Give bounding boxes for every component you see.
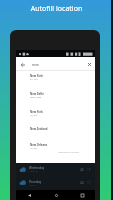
other: Back	[19, 61, 26, 68]
button[interactable]: Back	[16, 190, 43, 200]
button[interactable]: New Orleans	[16, 140, 95, 158]
staticText: IN, USA	[30, 114, 38, 117]
staticText: New York	[30, 110, 43, 114]
staticText: Light rain	[29, 170, 39, 173]
staticText: Thursday	[29, 180, 42, 184]
staticText: 24	[80, 181, 84, 185]
staticText: 18	[87, 168, 91, 172]
staticText: NY, USA	[30, 78, 38, 81]
button[interactable]: Recent apps	[69, 190, 95, 200]
staticText: Delhi, India	[30, 96, 42, 99]
staticText: powered by Google	[16, 151, 79, 154]
button[interactable]: New York	[16, 71, 95, 89]
staticText: 17	[87, 181, 91, 185]
staticText: new	[32, 62, 39, 67]
staticText: 26	[80, 168, 84, 172]
button[interactable]: Thursday	[16, 176, 95, 190]
staticText: Autofill location	[0, 4, 113, 14]
other: Clear query	[86, 61, 93, 68]
staticText: New Zealand	[30, 127, 48, 131]
button[interactable]: New Delhi	[16, 89, 95, 107]
button[interactable]: Back	[16, 57, 95, 70]
staticText: LA, USA	[30, 147, 38, 150]
staticText: Cloudy	[29, 184, 36, 187]
button[interactable]: Wednesday	[16, 163, 95, 176]
button[interactable]: New Zealand	[16, 124, 95, 140]
staticText: New York	[30, 74, 43, 78]
staticText: New Delhi	[30, 92, 44, 96]
button[interactable]: New York	[16, 107, 95, 125]
staticText: New Orleans	[30, 143, 48, 147]
button[interactable]: Home	[43, 190, 69, 200]
staticText: Wednesday	[29, 166, 45, 170]
